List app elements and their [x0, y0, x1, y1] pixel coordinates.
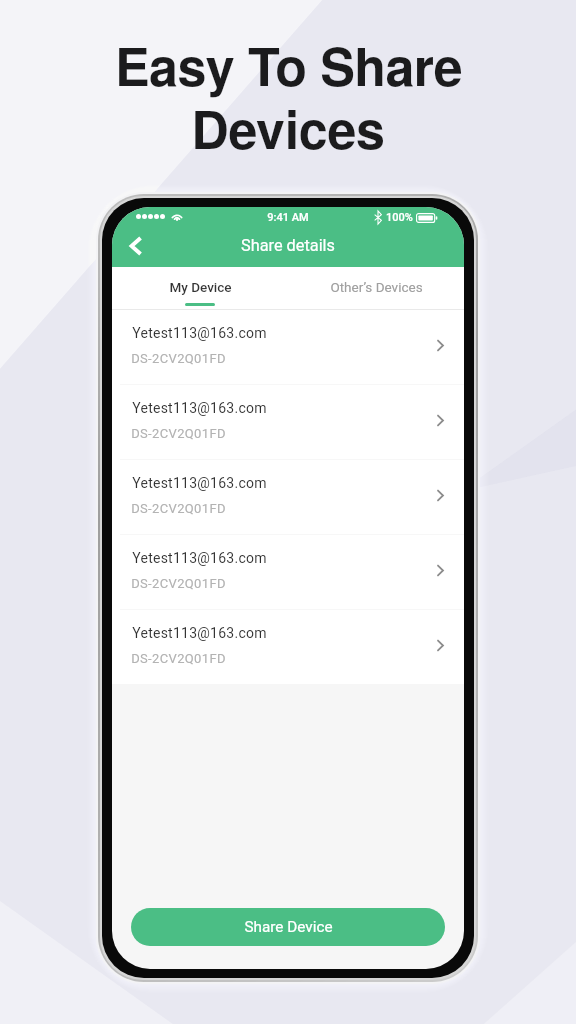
- button[interactable]: My Device: [112, 267, 288, 309]
- staticText: Yetest113@163.com: [132, 400, 267, 416]
- staticText: 9:41 AM: [267, 211, 309, 224]
- staticText: Other’s Devices: [330, 279, 423, 295]
- staticText: Yetest113@163.com: [132, 325, 267, 341]
- staticText: DS-2CV2Q01FD: [131, 501, 226, 516]
- button[interactable]: Back: [121, 231, 151, 261]
- staticText: Devices: [191, 90, 385, 164]
- button[interactable]: Share Device: [131, 908, 445, 946]
- button[interactable]: Yetest113@163.com: [112, 535, 464, 609]
- button[interactable]: Yetest113@163.com: [112, 610, 464, 684]
- staticText: DS-2CV2Q01FD: [131, 351, 226, 366]
- staticText: Share Device: [244, 918, 333, 936]
- staticText: Yetest113@163.com: [132, 550, 267, 566]
- button[interactable]: Yetest113@163.com: [112, 460, 464, 534]
- button[interactable]: Yetest113@163.com: [112, 385, 464, 459]
- button[interactable]: Other’s Devices: [288, 267, 464, 309]
- staticText: 100%: [386, 211, 413, 224]
- staticText: My Device: [169, 279, 232, 295]
- staticText: DS-2CV2Q01FD: [131, 651, 226, 666]
- staticText: Yetest113@163.com: [132, 625, 267, 641]
- staticText: Yetest113@163.com: [132, 475, 267, 491]
- staticText: DS-2CV2Q01FD: [131, 426, 226, 441]
- staticText: DS-2CV2Q01FD: [131, 576, 226, 591]
- staticText: Share details: [241, 236, 335, 255]
- staticText: Easy To Share: [115, 27, 462, 101]
- button[interactable]: Yetest113@163.com: [112, 310, 464, 384]
